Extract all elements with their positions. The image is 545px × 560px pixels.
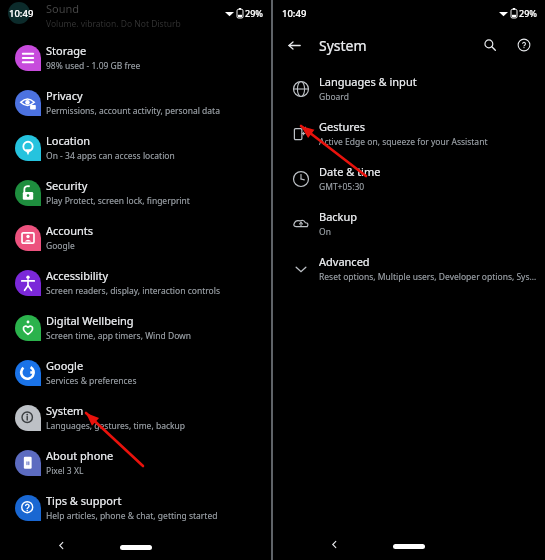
staticText: Google	[46, 358, 84, 373]
staticText: Screen time, app timers, Wind Down	[46, 330, 192, 342]
button[interactable]: Back	[323, 533, 345, 555]
button[interactable]: Backup	[273, 201, 545, 246]
button[interactable]: Tips & support	[0, 485, 271, 530]
staticText: 10:49	[9, 7, 34, 20]
staticText: Accessibility	[46, 268, 109, 283]
button[interactable]: Advanced	[273, 246, 545, 291]
staticText: System	[46, 403, 84, 418]
staticText: Permissions, account activity, personal …	[46, 105, 220, 117]
button[interactable]: Storage	[0, 35, 271, 80]
staticText: Screen readers, display, interaction con…	[46, 285, 220, 297]
staticText: About phone	[46, 448, 114, 463]
staticText: Languages & input	[319, 74, 417, 89]
staticText: Google	[46, 240, 75, 252]
staticText: 10:49	[282, 7, 307, 20]
staticText: 29%	[245, 7, 263, 19]
button[interactable]: About phone	[0, 440, 271, 485]
button[interactable]: Security	[0, 170, 271, 215]
staticText: Tips & support	[46, 493, 122, 508]
staticText: Digital Wellbeing	[46, 313, 134, 328]
button[interactable]: Gestures	[273, 111, 545, 156]
button[interactable]: Accessibility	[0, 260, 271, 305]
staticText: Backup	[319, 209, 358, 224]
staticText: Gboard	[319, 91, 349, 103]
staticText: Gestures	[319, 119, 366, 134]
staticText: Active Edge on, squeeze for your Assista…	[319, 136, 488, 148]
button[interactable]: Back	[50, 534, 72, 556]
staticText: On - 34 apps can access location	[46, 150, 175, 162]
button[interactable]: Help	[509, 30, 539, 60]
button[interactable]: Location	[0, 125, 271, 170]
staticText: Reset options, Multiple users, Developer…	[319, 271, 537, 283]
staticText: System	[319, 36, 367, 55]
staticText: Accounts	[46, 223, 94, 238]
button[interactable]: Languages & input	[273, 66, 545, 111]
staticText: Volume, vibration, Do Not Disturb	[46, 18, 181, 27]
staticText: Sound	[46, 1, 80, 16]
staticText: 29%	[519, 7, 537, 19]
staticText: Pixel 3 XL	[46, 465, 84, 477]
staticText: 98% used - 1.09 GB free	[46, 60, 141, 72]
button[interactable]: Date & time	[273, 156, 545, 201]
button[interactable]: Home	[393, 544, 425, 549]
staticText: Help articles, phone & chat, getting sta…	[46, 510, 218, 522]
button[interactable]: Home	[120, 545, 152, 550]
staticText: Date & time	[319, 164, 381, 179]
button[interactable]: Search	[475, 30, 505, 60]
button[interactable]: Google	[0, 350, 271, 395]
staticText: Location	[46, 133, 91, 148]
button[interactable]: System	[0, 395, 271, 440]
staticText: Storage	[46, 43, 87, 58]
staticText: Privacy	[46, 88, 83, 103]
staticText: Languages, gestures, time, backup	[46, 420, 186, 432]
button[interactable]: Privacy	[0, 80, 271, 125]
button[interactable]: Back	[279, 30, 309, 60]
staticText: Security	[46, 178, 88, 193]
staticText: Advanced	[319, 254, 370, 269]
button[interactable]: Accounts	[0, 215, 271, 260]
staticText: Play Protect, screen lock, fingerprint	[46, 195, 190, 207]
staticText: On	[319, 226, 331, 238]
staticText: GMT+05:30	[319, 181, 365, 193]
button[interactable]: Digital Wellbeing	[0, 305, 271, 350]
staticText: Services & preferences	[46, 375, 137, 387]
